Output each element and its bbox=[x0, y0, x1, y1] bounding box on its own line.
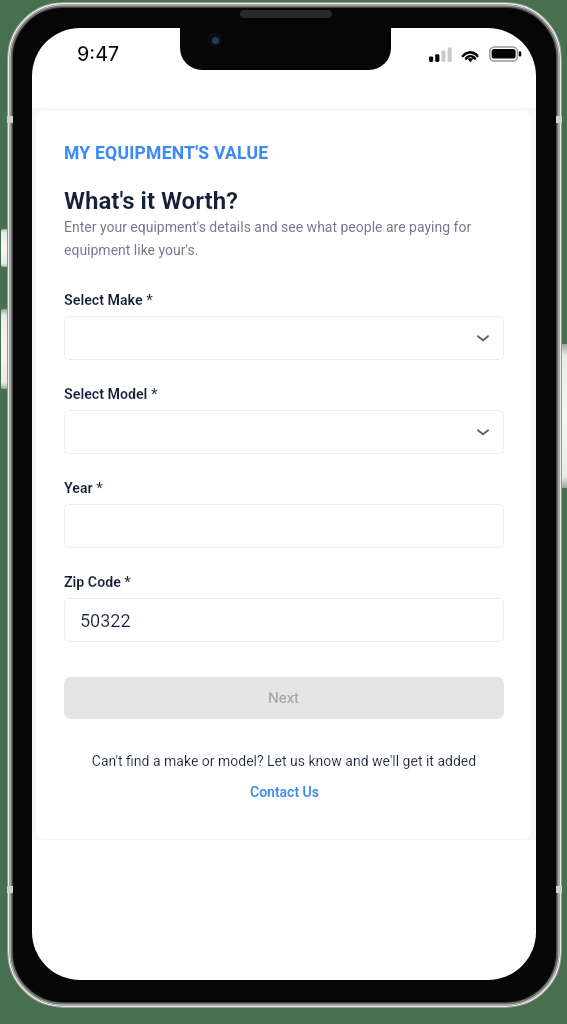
other: Wi-Fi bbox=[460, 46, 481, 62]
staticText: Can't find a make or model? Let us know … bbox=[64, 753, 504, 769]
staticText: What's it Worth? bbox=[64, 187, 239, 215]
button[interactable] bbox=[64, 504, 504, 548]
staticText: Year * bbox=[64, 480, 103, 497]
button[interactable]: Open dropdown bbox=[64, 316, 504, 360]
button[interactable]: Contact Us bbox=[246, 782, 323, 802]
other: Open dropdown bbox=[477, 332, 489, 344]
staticText: Zip Code * bbox=[64, 574, 131, 591]
staticText: 9:47 bbox=[77, 42, 120, 66]
other: Open dropdown bbox=[477, 426, 489, 438]
staticText: MY EQUIPMENT'S VALUE bbox=[64, 143, 269, 164]
button[interactable]: Open dropdown bbox=[64, 410, 504, 454]
button[interactable]: Next bbox=[64, 677, 504, 719]
staticText: Next bbox=[268, 689, 300, 707]
other: Cellular signal bbox=[429, 47, 453, 63]
staticText: Select Model * bbox=[64, 386, 158, 403]
button[interactable]: 50322 bbox=[64, 598, 504, 642]
staticText: Select Make * bbox=[64, 292, 153, 309]
staticText: 50322 bbox=[80, 610, 131, 631]
other: Battery bbox=[489, 46, 522, 63]
staticText: Enter your equipment's details and see w… bbox=[64, 219, 484, 258]
